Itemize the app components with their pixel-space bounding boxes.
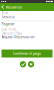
staticText: Servicio bbox=[1, 14, 14, 19]
button[interactable]: Cancel bbox=[28, 61, 34, 67]
button[interactable]: Confirmar el pago bbox=[1, 49, 52, 57]
staticText: Juan Perez bbox=[1, 28, 15, 31]
staticText: Alias bbox=[1, 11, 7, 14]
staticText: Alguna Observacion bbox=[1, 34, 34, 39]
button[interactable]: Back bbox=[1, 5, 4, 9]
staticText: Resumen bbox=[6, 4, 22, 10]
staticText: Pagante bbox=[1, 21, 14, 26]
button[interactable]: Confirm bbox=[20, 61, 26, 67]
staticText: Confirmar el pago bbox=[13, 51, 41, 56]
staticText: Datos del Pago bbox=[1, 32, 22, 35]
